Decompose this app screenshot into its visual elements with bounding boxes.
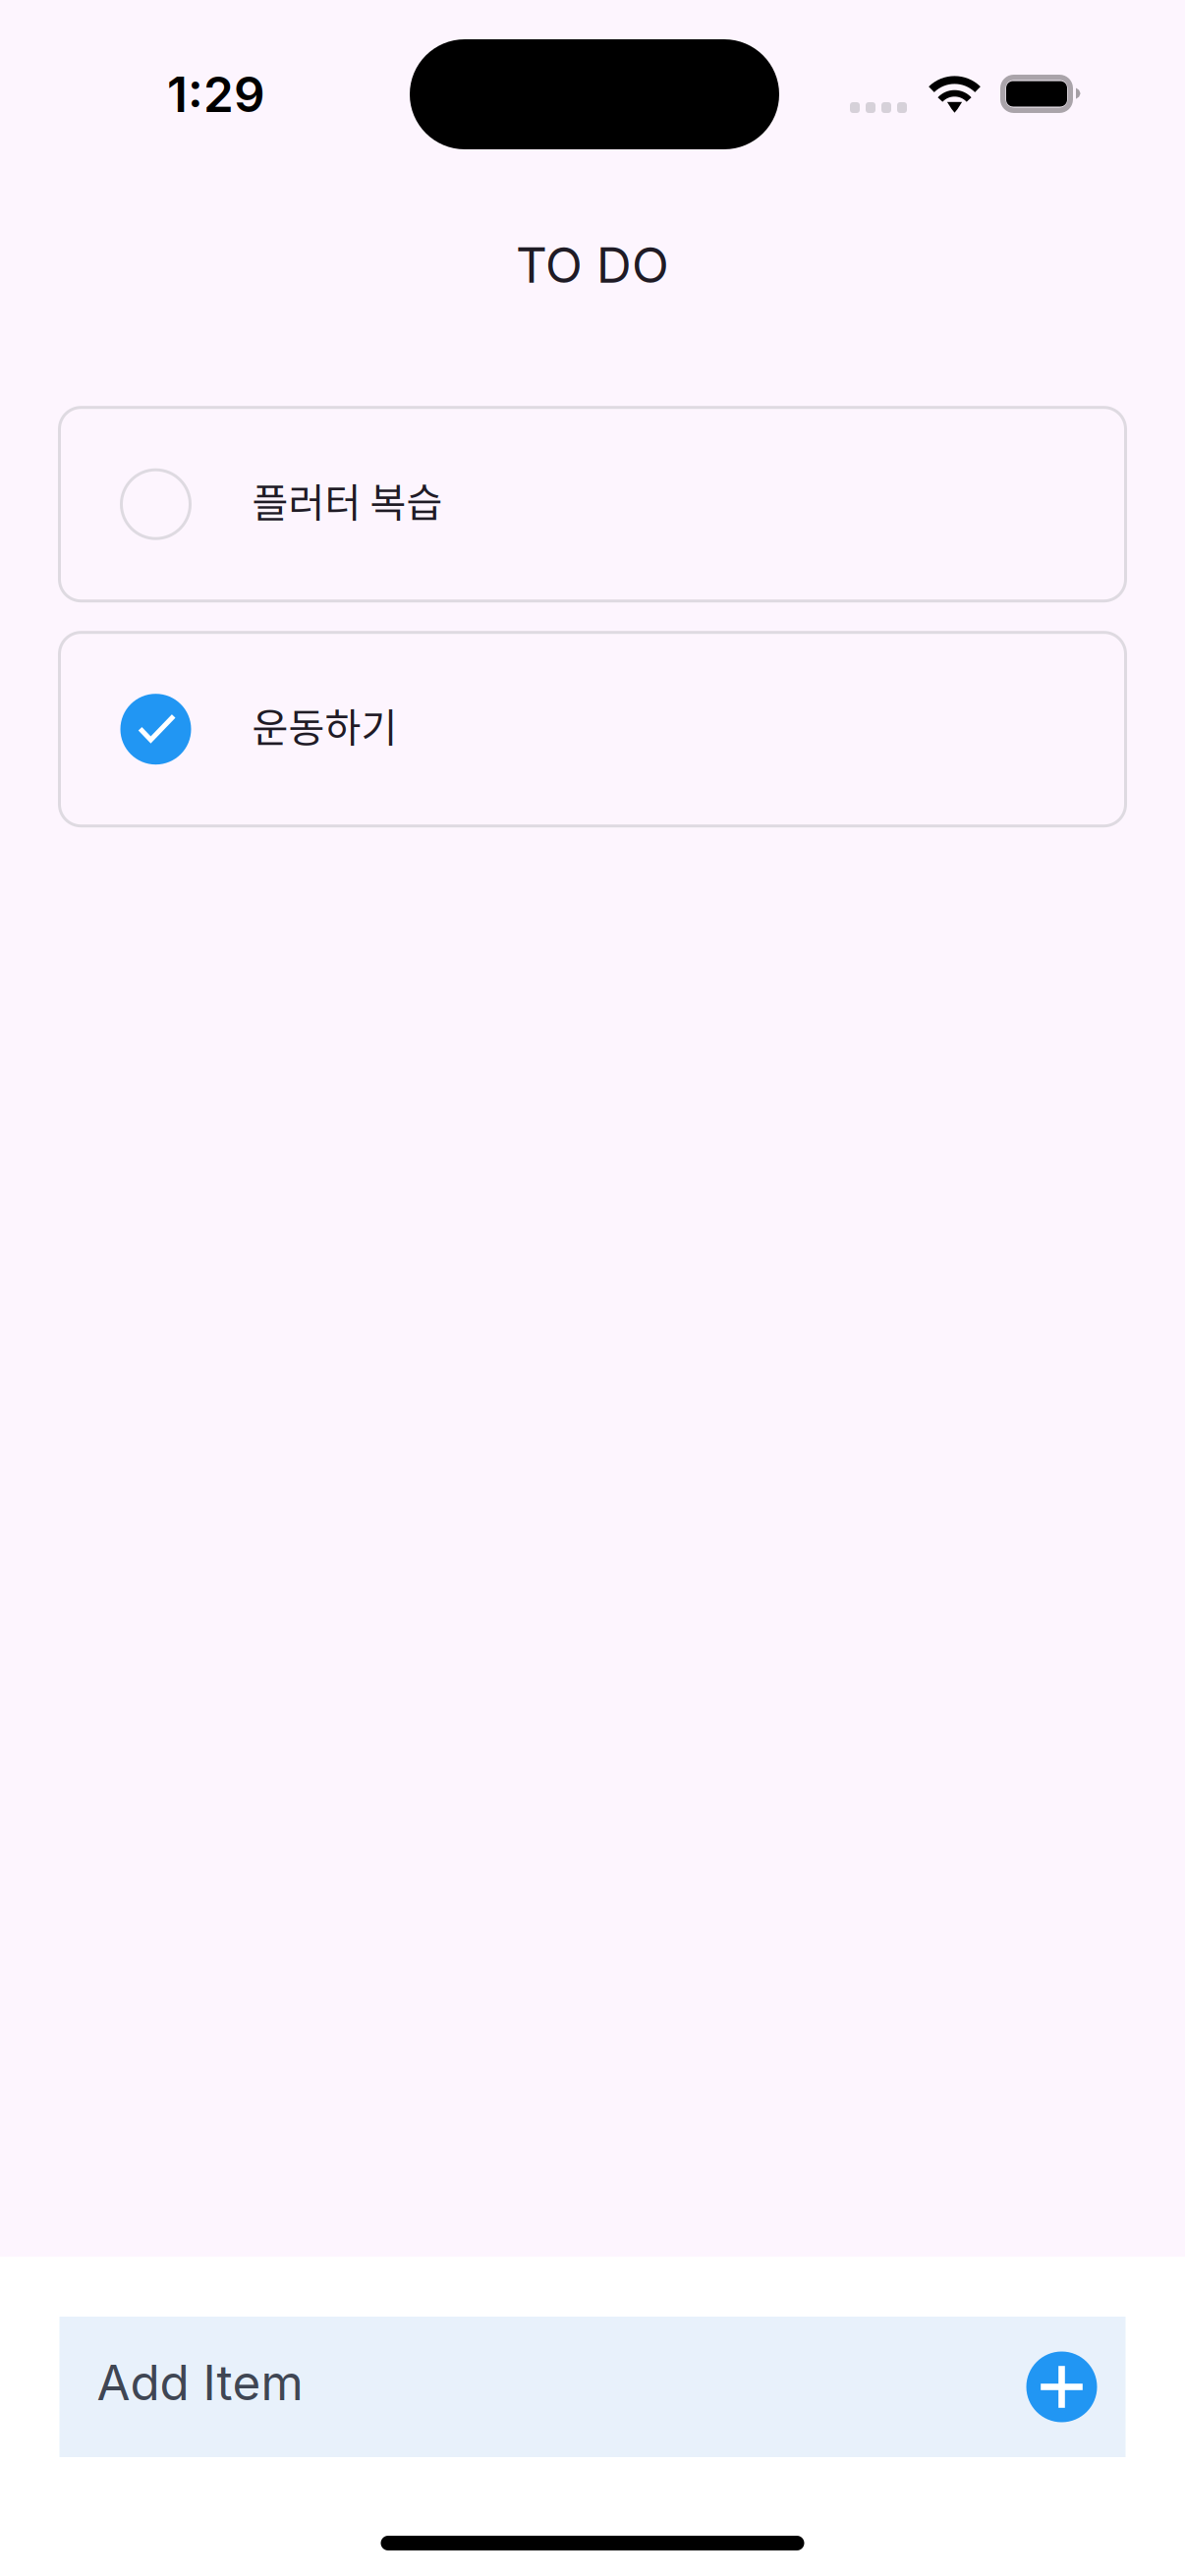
- staticText: TO DO: [516, 236, 669, 294]
- staticText: 1:29: [167, 65, 265, 124]
- staticText: Add Item: [97, 2353, 303, 2412]
- button[interactable]: Add item: [1026, 2317, 1126, 2457]
- button[interactable]: Add Item: [59, 2317, 1026, 2457]
- button[interactable]: 플러터 복습: [59, 407, 1126, 601]
- button[interactable]: 운동하기: [59, 632, 1126, 826]
- staticText: 플러터 복습: [252, 471, 443, 528]
- staticText: 운동하기: [252, 696, 397, 753]
